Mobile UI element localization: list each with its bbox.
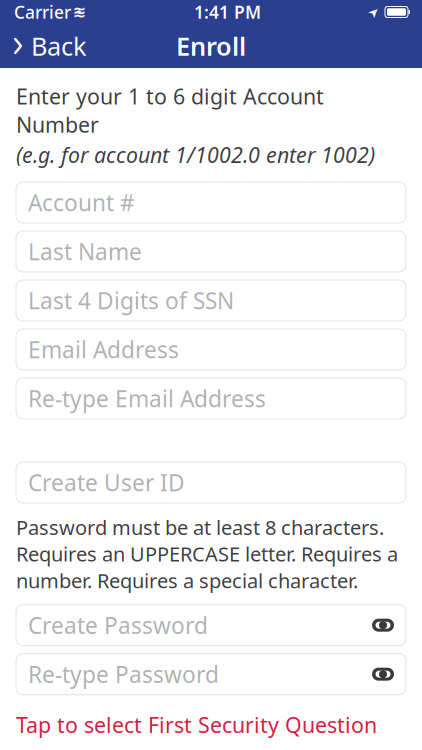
staticText: (e.g. for account 1/1002.0 enter 1002)	[16, 141, 375, 169]
staticText: Tap to select First Security Question	[16, 711, 377, 739]
button[interactable]: Show password	[368, 659, 398, 689]
staticText: Last Name	[28, 236, 142, 266]
button[interactable]: Back	[0, 23, 87, 69]
staticText: Carrier	[14, 0, 71, 23]
staticText: ➤	[368, 4, 379, 19]
staticText: Email Address	[28, 334, 179, 364]
staticText: Create Password	[28, 610, 208, 640]
staticText: ≋	[72, 3, 85, 21]
staticText: Re-type Password	[28, 659, 219, 689]
staticText: Back	[31, 29, 87, 63]
staticText: Enter your 1 to 6 digit Account Number	[16, 82, 324, 139]
staticText: Re-type Email Address	[28, 383, 266, 413]
staticText: Account #	[28, 187, 135, 217]
staticText: 1:41 PM	[194, 0, 261, 23]
staticText: Last 4 Digits of SSN	[28, 285, 234, 315]
staticText: Create User ID	[28, 467, 185, 497]
button[interactable]: Tap to select First Security Question	[16, 707, 377, 743]
staticText: Enroll	[176, 29, 246, 63]
staticText: Password must be at least 8 characters. …	[16, 514, 398, 594]
button[interactable]: Show password	[368, 610, 398, 640]
